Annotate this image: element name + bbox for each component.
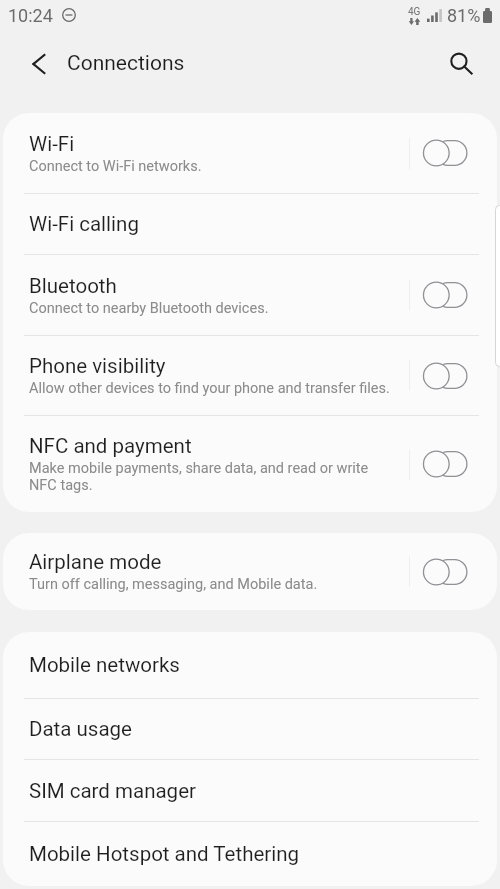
staticText: 4G — [408, 6, 421, 18]
button[interactable]: Mobile networks — [3, 632, 497, 698]
button[interactable]: SIM card manager — [3, 760, 497, 821]
button[interactable]: Mobile Hotspot and Tethering — [3, 822, 497, 886]
button[interactable]: Wi-Fi — [3, 113, 497, 193]
button[interactable]: Data usage — [3, 699, 497, 759]
staticText: Connections — [67, 51, 185, 76]
button[interactable]: Toggle — [423, 359, 471, 393]
staticText: Connect to Wi-Fi networks. — [29, 158, 202, 175]
staticText: Bluetooth — [29, 274, 117, 298]
staticText: 10:24 — [8, 5, 53, 26]
staticText: 81% — [447, 5, 481, 26]
button[interactable]: Bluetooth — [3, 255, 497, 335]
button[interactable]: Phone visibility — [3, 336, 497, 415]
button[interactable]: Airplane mode — [3, 533, 497, 610]
staticText: Connect to nearby Bluetooth devices. — [29, 300, 269, 317]
button[interactable]: Search — [438, 42, 482, 86]
staticText: Mobile Hotspot and Tethering — [29, 842, 300, 866]
staticText: Allow other devices to find your phone a… — [29, 380, 390, 397]
button[interactable]: Toggle — [423, 555, 471, 589]
staticText: NFC and payment — [29, 434, 192, 458]
staticText: Turn off calling, messaging, and Mobile … — [29, 576, 318, 593]
button[interactable]: NFC and payment — [3, 416, 497, 512]
staticText: Wi-Fi calling — [29, 212, 139, 236]
staticText: Phone visibility — [29, 354, 166, 378]
staticText: Mobile networks — [29, 653, 180, 677]
button[interactable]: Toggle — [423, 136, 471, 170]
staticText: Airplane mode — [29, 550, 162, 574]
staticText: SIM card manager — [29, 779, 196, 803]
staticText: Wi-Fi — [29, 132, 75, 156]
button[interactable]: Navigate up — [16, 42, 60, 86]
staticText: Make mobile payments, share data, and re… — [29, 460, 397, 494]
staticText: Data usage — [29, 717, 132, 741]
button[interactable]: Toggle — [423, 278, 471, 312]
button[interactable]: Wi-Fi calling — [3, 194, 497, 254]
button[interactable]: Toggle — [423, 447, 471, 481]
